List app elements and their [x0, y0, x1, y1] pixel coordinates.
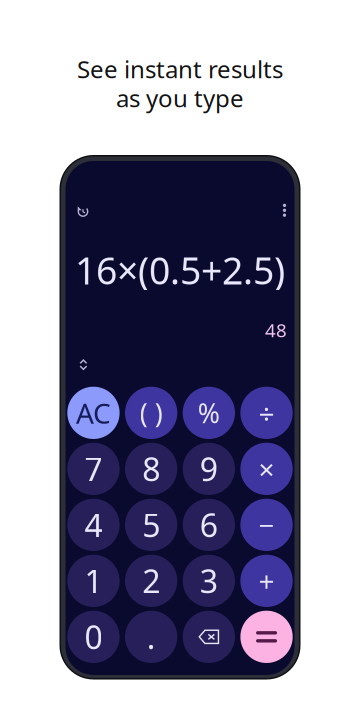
button[interactable]: . — [125, 611, 177, 663]
staticText: 48 — [265, 318, 287, 342]
staticText: + — [259, 562, 275, 599]
staticText: 5 — [142, 504, 160, 546]
staticText: 4 — [84, 504, 102, 546]
staticText: 3 — [200, 560, 218, 602]
staticText: AC — [76, 394, 111, 431]
button[interactable]: More options — [269, 195, 299, 225]
button[interactable]: % — [183, 387, 235, 439]
button[interactable]: − — [240, 499, 293, 551]
staticText: % — [198, 395, 220, 430]
button[interactable]: 3 — [183, 555, 235, 607]
button[interactable]: + — [240, 555, 293, 607]
button[interactable]: 5 — [125, 499, 177, 551]
button[interactable]: Expand — [70, 352, 96, 378]
staticText: − — [259, 506, 275, 543]
button[interactable]: History — [68, 196, 98, 226]
button[interactable]: ( ) — [125, 387, 177, 439]
button[interactable]: ÷ — [240, 387, 293, 439]
staticText: See instant results — [77, 53, 283, 85]
staticText: 0 — [84, 616, 102, 658]
button[interactable]: AC — [67, 387, 120, 439]
button[interactable]: 7 — [67, 443, 120, 495]
button[interactable]: 1 — [67, 555, 120, 607]
staticText: × — [259, 450, 275, 487]
button[interactable]: Backspace — [183, 611, 235, 663]
staticText: as you type — [116, 82, 244, 114]
button[interactable]: 6 — [183, 499, 235, 551]
staticText: ( ) — [140, 395, 163, 430]
button[interactable]: 8 — [125, 443, 177, 495]
button[interactable]: × — [240, 443, 293, 495]
staticText: 7 — [84, 448, 102, 490]
staticText: 9 — [200, 448, 218, 490]
button[interactable]: 0 — [67, 611, 120, 663]
staticText: 8 — [142, 448, 160, 490]
staticText: . — [147, 616, 156, 658]
button[interactable]: 4 — [67, 499, 120, 551]
staticText: ÷ — [259, 394, 275, 431]
button[interactable]: 9 — [183, 443, 235, 495]
button[interactable]: 2 — [125, 555, 177, 607]
button[interactable]: Equals — [240, 611, 293, 663]
staticText: 16×(0.5+2.5) — [75, 245, 285, 295]
staticText: 2 — [142, 560, 160, 602]
staticText: 6 — [200, 504, 218, 546]
staticText: 1 — [84, 560, 102, 602]
